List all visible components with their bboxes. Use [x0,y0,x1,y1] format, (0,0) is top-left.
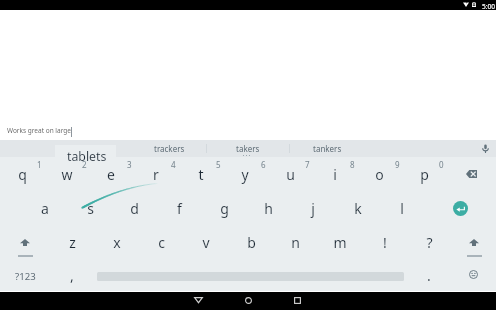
button[interactable]: a [23,191,67,225]
staticText: i [333,165,337,184]
button[interactable]: v [184,225,228,259]
button[interactable]: Home [229,292,269,310]
button[interactable]: d [112,191,156,225]
staticText: ?123 [15,270,36,283]
button[interactable]: ? [407,225,451,259]
staticText: 3 [127,159,132,169]
button[interactable]: Enter [453,201,468,216]
staticText: . [427,266,431,285]
button[interactable]: j [291,191,335,225]
button[interactable]: z [50,225,94,259]
staticText: , [70,266,74,285]
staticText: k [354,199,362,218]
staticText: 7 [305,159,310,169]
staticText: z [69,233,76,252]
staticText: o [375,165,384,184]
button[interactable]: Shift [452,226,496,260]
staticText: c [158,233,165,252]
staticText: y [241,165,249,184]
staticText: 0 [439,159,444,169]
button[interactable] [55,145,116,157]
button[interactable]: Backspace [460,163,482,185]
button[interactable]: Shift [3,226,47,260]
button[interactable]: u [268,157,312,191]
staticText: takers [236,143,260,154]
button[interactable]: . [407,258,451,292]
button[interactable]: r [134,157,178,191]
staticText: e [107,165,115,184]
staticText: u [286,165,295,184]
staticText: 5:00 [482,2,496,11]
staticText: w [61,165,73,184]
button[interactable]: takers [209,140,287,157]
button[interactable]: w [45,157,89,191]
button[interactable]: s [68,191,112,225]
button[interactable]: ! [363,225,407,259]
staticText: q [18,165,27,184]
button[interactable]: tankers [288,140,366,157]
staticText: n [291,233,300,252]
button[interactable]: i [313,157,357,191]
button[interactable]: Back [178,292,218,310]
staticText: 6 [261,159,266,169]
staticText: ! [383,233,387,252]
button[interactable]: f [157,191,201,225]
staticText: d [130,199,139,218]
button[interactable]: y [223,157,267,191]
staticText: j [311,199,315,218]
button[interactable]: q [0,157,44,191]
button[interactable]: k [336,191,380,225]
staticText: v [202,233,210,252]
button[interactable]: ?123 [8,265,42,287]
button[interactable]: p [402,157,446,191]
staticText: 1 [37,159,42,169]
button[interactable]: l [380,191,424,225]
staticText: 9 [395,159,400,169]
button[interactable]: Recents [278,292,318,310]
staticText: p [420,165,429,184]
button[interactable]: m [318,225,362,259]
staticText: tablets [67,148,107,165]
button[interactable]: trackers [130,140,208,157]
staticText: l [400,199,404,218]
staticText: Works great on large [7,126,71,135]
staticText: x [113,233,121,252]
button[interactable]: n [273,225,317,259]
staticText: b [247,233,256,252]
button[interactable]: o [357,157,401,191]
staticText: 8 [350,159,355,169]
button[interactable]: , [50,258,94,292]
button[interactable]: c [139,225,183,259]
staticText: t [198,165,204,184]
staticText: a [41,199,49,218]
staticText: 2 [82,159,87,169]
button[interactable]: b [229,225,273,259]
button[interactable]: x [95,225,139,259]
button[interactable]: h [246,191,290,225]
staticText: trackers [154,143,185,154]
staticText: s [87,199,94,218]
staticText: f [177,199,182,218]
button[interactable]: Voice input [477,140,494,157]
staticText: h [264,199,273,218]
staticText: r [153,165,159,184]
staticText: 4 [171,159,176,169]
staticText: g [220,199,229,218]
button[interactable]: e [89,157,133,191]
staticText: 5 [216,159,221,169]
staticText: ? [426,233,433,252]
button[interactable]: t [179,157,223,191]
button[interactable]: g [202,191,246,225]
button[interactable]: Emoji [465,266,482,283]
staticText: tankers [313,143,342,154]
staticText: m [333,233,347,252]
